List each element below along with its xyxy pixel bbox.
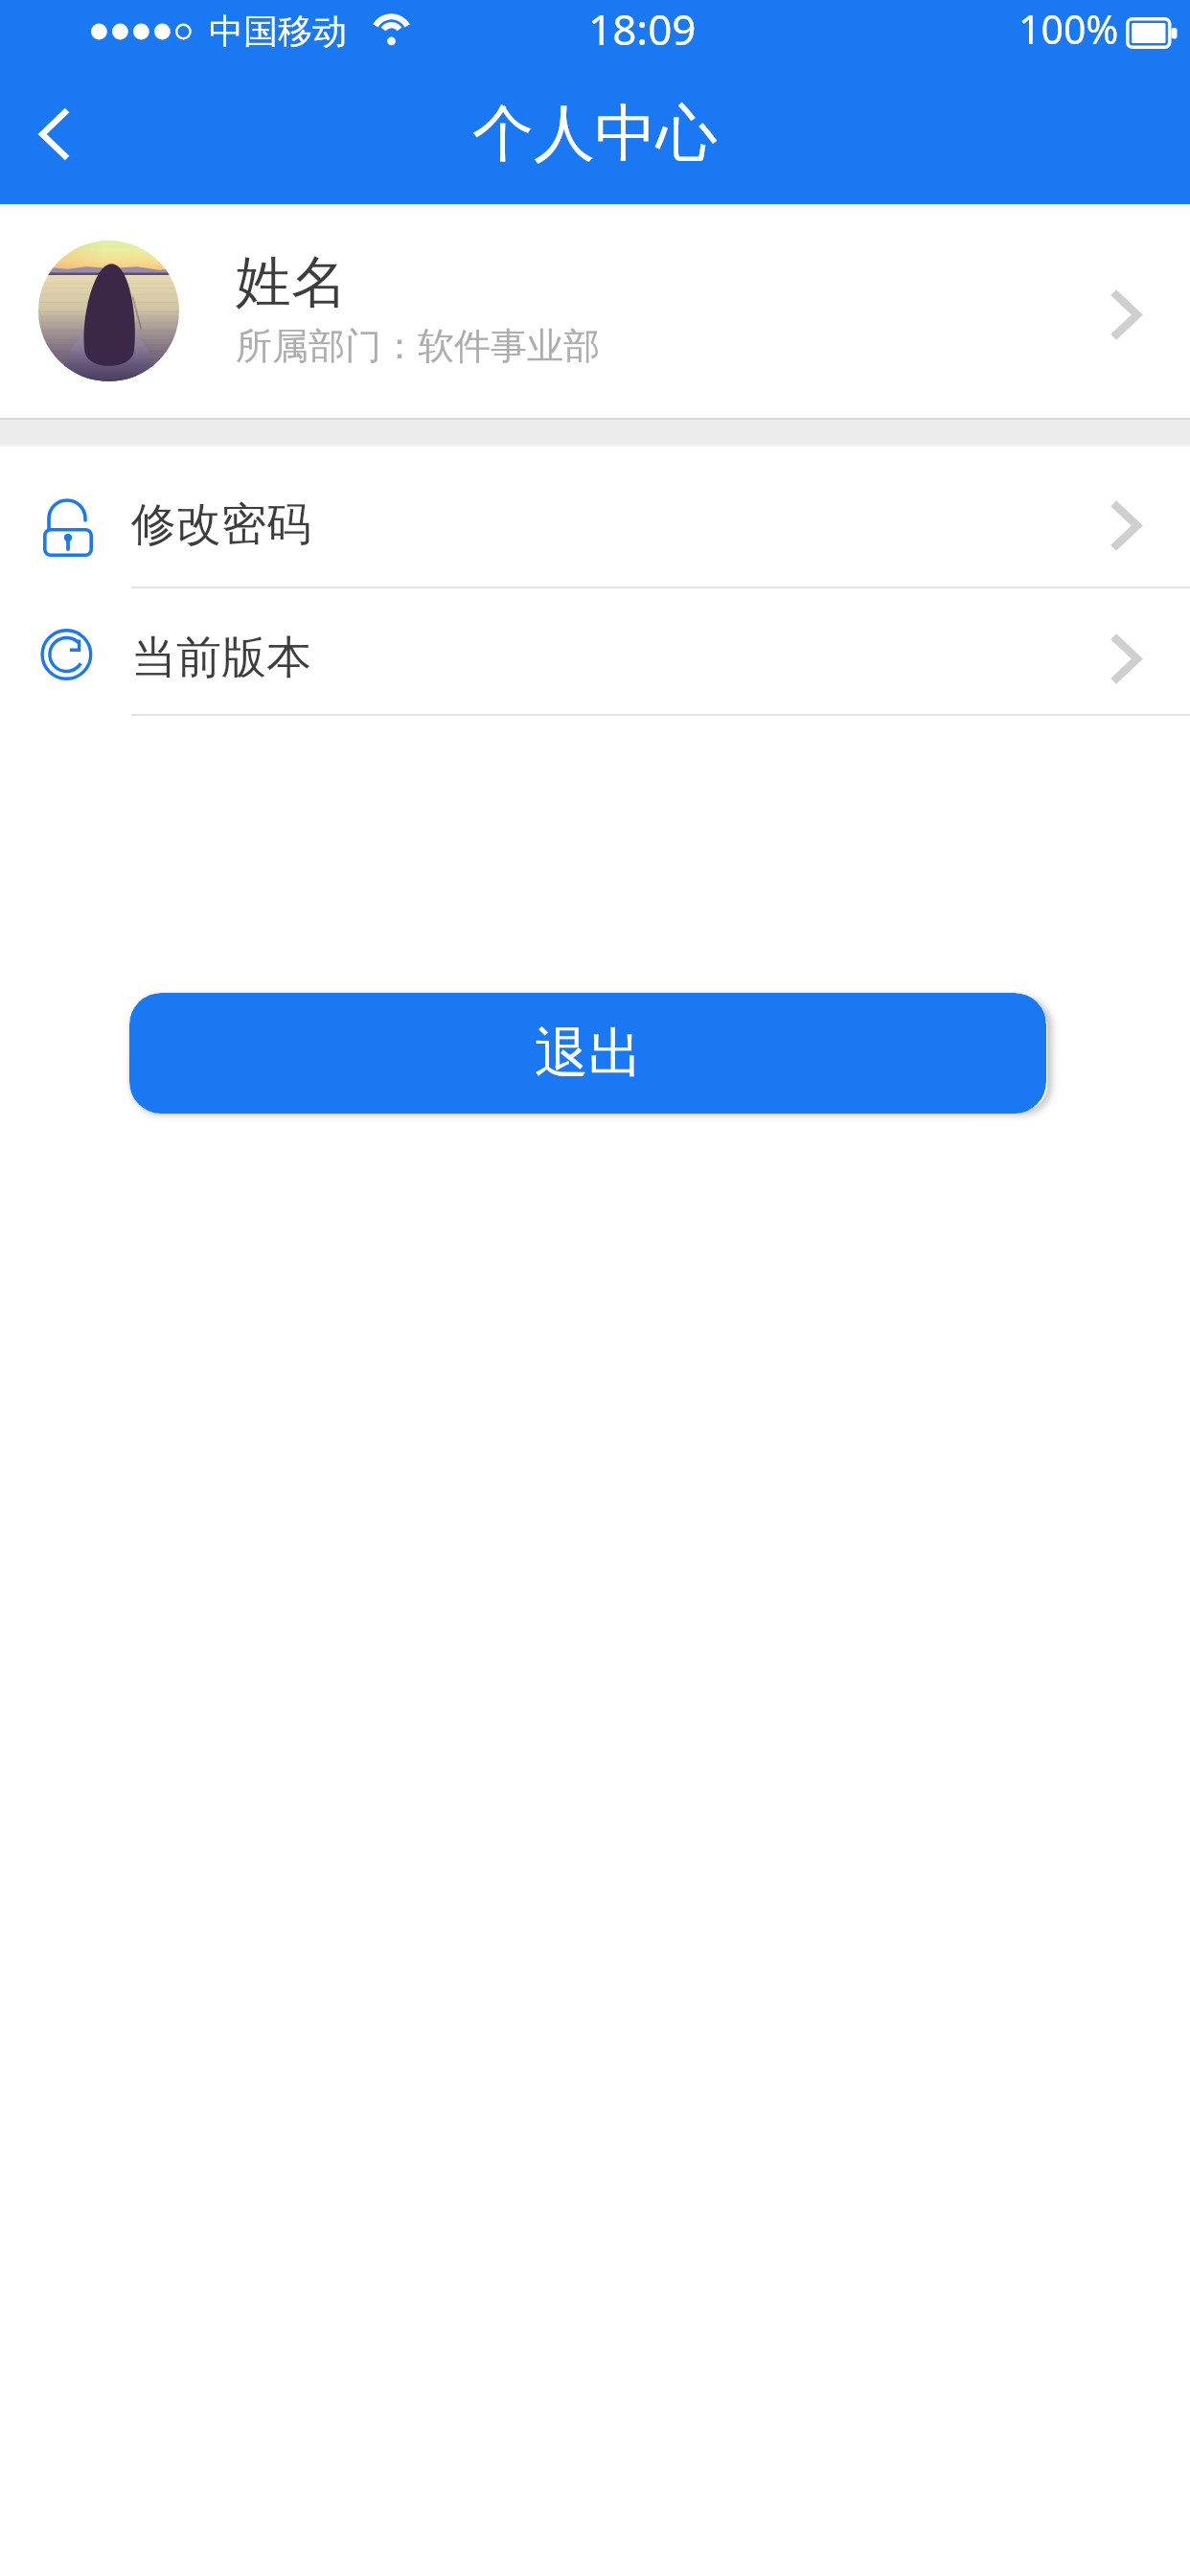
staticText: 姓名 <box>236 247 347 317</box>
staticText: 修改密码 <box>131 496 311 553</box>
button[interactable]: 姓名 <box>0 204 1190 418</box>
button[interactable]: Back <box>0 63 107 204</box>
staticText: 18:09 <box>588 0 697 57</box>
button[interactable]: 修改密码 <box>0 447 1190 586</box>
button[interactable]: 当前版本 <box>0 586 1190 714</box>
staticText: 所属部门：软件事业部 <box>236 323 600 369</box>
button[interactable]: 退出 <box>129 993 1046 1114</box>
staticText: 个人中心 <box>472 95 718 172</box>
staticText: 退出 <box>535 1020 642 1088</box>
staticText: 当前版本 <box>131 630 311 686</box>
staticText: 中国移动 <box>209 10 347 53</box>
staticText: 100% <box>1018 2 1119 56</box>
